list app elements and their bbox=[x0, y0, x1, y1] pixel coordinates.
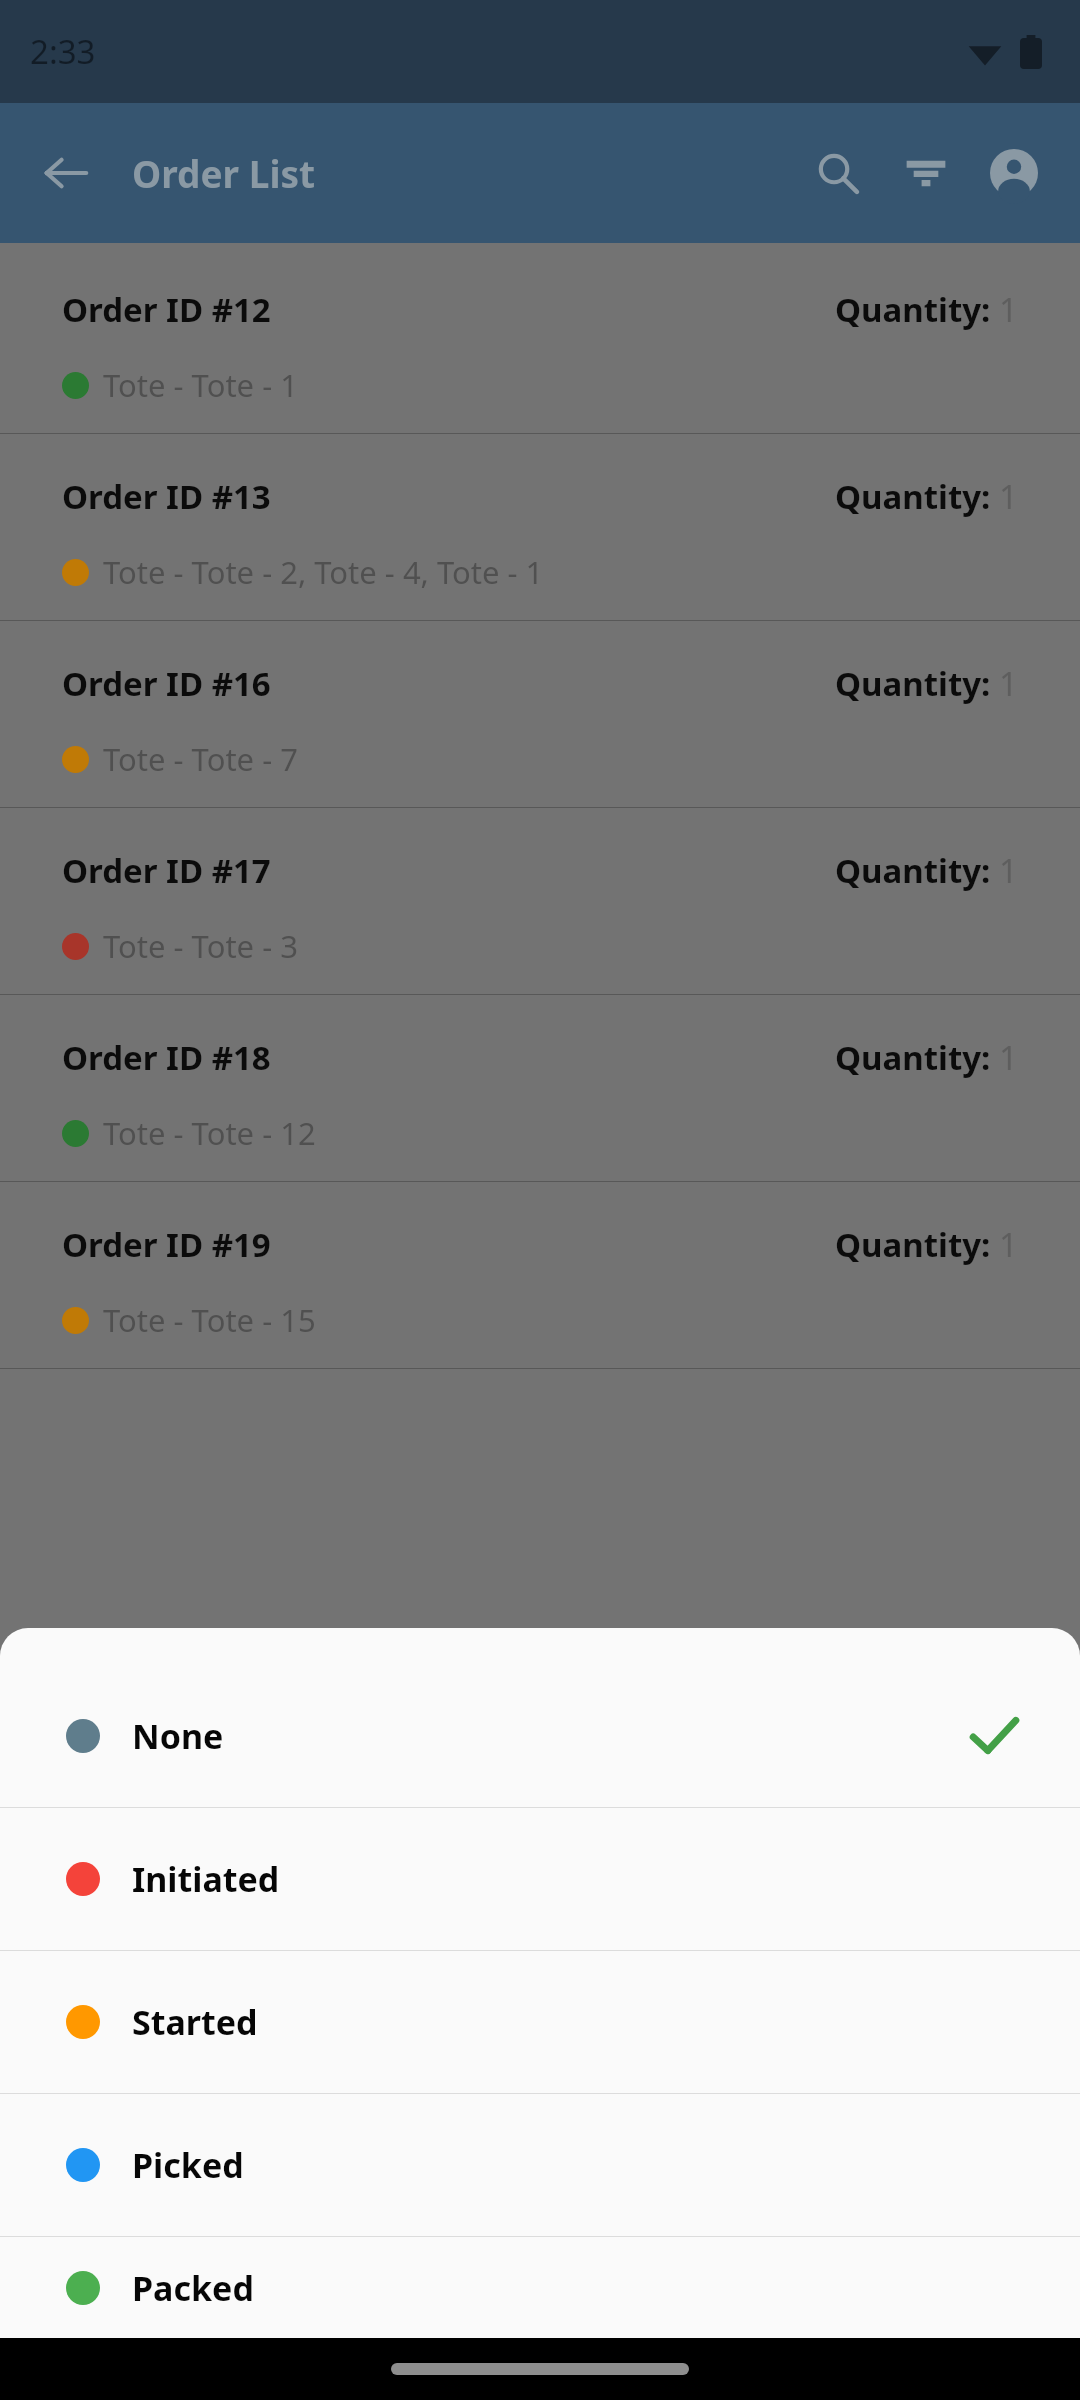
button[interactable]: Order ID #12 bbox=[0, 247, 1080, 433]
button[interactable]: Started bbox=[0, 1951, 1080, 2093]
staticText: Order ID #17 bbox=[62, 848, 835, 893]
staticText: Started bbox=[132, 1999, 1020, 2045]
staticText: Tote - Tote - 15 bbox=[103, 1299, 316, 1341]
staticText: Order List bbox=[132, 148, 794, 198]
staticText: Quantity: bbox=[835, 661, 999, 706]
button[interactable]: Search bbox=[794, 129, 882, 217]
button[interactable]: Initiated bbox=[0, 1808, 1080, 1950]
button[interactable]: Picked bbox=[0, 2094, 1080, 2236]
staticText: 1 bbox=[999, 287, 1018, 332]
staticText: Quantity: bbox=[835, 287, 999, 332]
staticText: Packed bbox=[132, 2265, 1020, 2311]
button[interactable]: Packed bbox=[0, 2237, 1080, 2338]
staticText: 1 bbox=[999, 474, 1018, 519]
button[interactable]: Order ID #19 bbox=[0, 1182, 1080, 1368]
staticText: Quantity: bbox=[835, 1222, 999, 1267]
staticText: 2:33 bbox=[30, 29, 96, 74]
button[interactable]: Order ID #17 bbox=[0, 808, 1080, 994]
staticText: Tote - Tote - 2, Tote - 4, Tote - 1 bbox=[103, 551, 544, 593]
staticText: Tote - Tote - 1 bbox=[103, 364, 298, 406]
staticText: Tote - Tote - 7 bbox=[103, 738, 298, 780]
button[interactable]: Filter bbox=[882, 129, 970, 217]
staticText: Quantity: bbox=[835, 1035, 999, 1080]
staticText: Tote - Tote - 12 bbox=[103, 1112, 316, 1154]
button[interactable]: Back bbox=[22, 129, 110, 217]
button[interactable]: Order ID #18 bbox=[0, 995, 1080, 1181]
staticText: 1 bbox=[999, 848, 1018, 893]
staticText: Quantity: bbox=[835, 848, 999, 893]
staticText: Quantity: bbox=[835, 474, 999, 519]
button[interactable]: Account bbox=[970, 129, 1058, 217]
staticText: Initiated bbox=[132, 1856, 1020, 1902]
other: Selected bbox=[968, 1710, 1020, 1762]
button[interactable]: Order ID #16 bbox=[0, 621, 1080, 807]
staticText: 1 bbox=[999, 1035, 1018, 1080]
staticText: Order ID #12 bbox=[62, 287, 835, 332]
staticText: Order ID #18 bbox=[62, 1035, 835, 1080]
staticText: Order ID #16 bbox=[62, 661, 835, 706]
staticText: Picked bbox=[132, 2142, 1020, 2188]
staticText: Order ID #19 bbox=[62, 1222, 835, 1267]
staticText: Tote - Tote - 3 bbox=[103, 925, 298, 967]
staticText: Order ID #13 bbox=[62, 474, 835, 519]
staticText: 1 bbox=[999, 661, 1018, 706]
button[interactable]: None bbox=[0, 1665, 1080, 1807]
staticText: None bbox=[132, 1713, 968, 1759]
button[interactable]: Order ID #13 bbox=[0, 434, 1080, 620]
staticText: 1 bbox=[999, 1222, 1018, 1267]
